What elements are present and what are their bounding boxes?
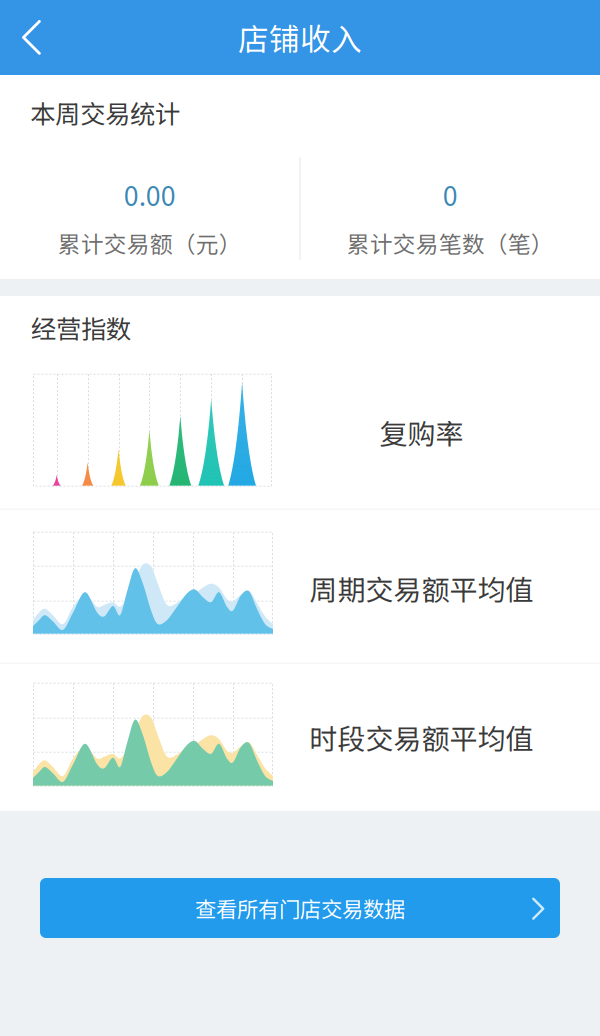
staticText: 经营指数 xyxy=(31,309,131,346)
staticText: 累计交易笔数（笔） xyxy=(347,227,554,259)
button[interactable]: 时段交易额平均值 xyxy=(0,664,600,811)
button[interactable]: 查看所有门店交易数据 xyxy=(40,878,560,938)
staticText: 本周交易统计 xyxy=(30,94,180,131)
staticText: 0 xyxy=(443,175,458,214)
staticText: 时段交易额平均值 xyxy=(309,717,533,757)
button[interactable]: 复购率 xyxy=(0,346,600,509)
staticText: 0.00 xyxy=(124,175,176,214)
staticText: 查看所有门店交易数据 xyxy=(195,893,405,923)
staticText: 店铺收入 xyxy=(238,15,362,60)
staticText: 复购率 xyxy=(379,412,463,452)
button[interactable]: Back xyxy=(0,0,63,75)
button[interactable]: 周期交易额平均值 xyxy=(0,510,600,663)
staticText: 累计交易额（元） xyxy=(58,227,242,259)
staticText: 周期交易额平均值 xyxy=(309,568,533,608)
